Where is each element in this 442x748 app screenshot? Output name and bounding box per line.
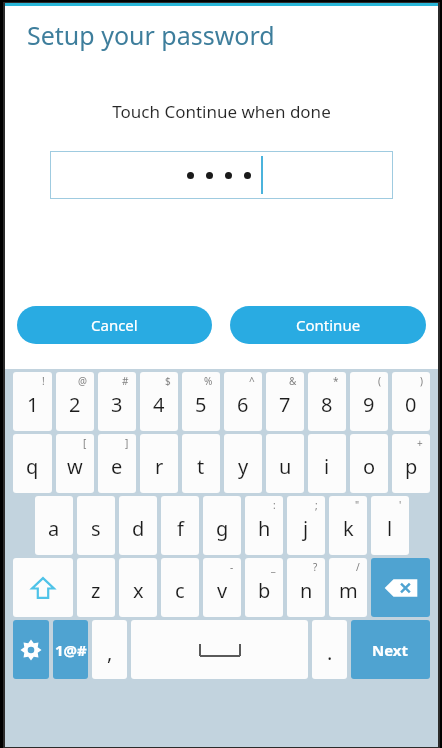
staticText: 8	[321, 391, 333, 418]
staticText: %	[204, 374, 213, 388]
button[interactable]: c	[161, 558, 199, 617]
staticText: 7	[279, 391, 291, 418]
button[interactable]: p	[392, 434, 430, 493]
button[interactable]: y	[224, 434, 262, 493]
staticText: d	[132, 515, 145, 542]
staticText: :	[273, 498, 276, 512]
staticText: p	[405, 453, 418, 480]
staticText: Cancel	[91, 315, 138, 335]
staticText: )	[420, 374, 423, 388]
staticText: @	[78, 374, 87, 388]
button[interactable]: 5	[182, 372, 220, 431]
staticText: 4	[153, 391, 165, 418]
button[interactable]: i	[308, 434, 346, 493]
staticText: l	[387, 515, 393, 542]
button[interactable]: b	[245, 558, 283, 617]
button[interactable]: n	[287, 558, 325, 617]
button[interactable]: s	[77, 496, 115, 555]
staticText: *	[333, 374, 339, 388]
button[interactable]: f	[161, 496, 199, 555]
staticText: 1	[27, 391, 39, 418]
button[interactable]: x	[119, 558, 157, 617]
button[interactable]: Shift	[13, 558, 73, 617]
button[interactable]: 6	[224, 372, 262, 431]
button[interactable]: Cancel	[17, 306, 212, 344]
button[interactable]: Next	[351, 620, 430, 679]
button[interactable]: 2	[56, 372, 94, 431]
button[interactable]: l	[371, 496, 409, 555]
button[interactable]: 7	[266, 372, 304, 431]
staticText: m	[339, 577, 358, 604]
button[interactable]: 0	[392, 372, 430, 431]
staticText: 1@#	[55, 640, 87, 660]
button[interactable]: u	[266, 434, 304, 493]
staticText: v	[217, 577, 228, 604]
button[interactable]: Settings	[13, 620, 49, 679]
button[interactable]: 3	[98, 372, 136, 431]
staticText: ?	[313, 560, 318, 574]
button[interactable]: .	[312, 620, 347, 679]
staticText: 3	[111, 391, 123, 418]
button[interactable]: q	[13, 434, 52, 493]
staticText: $	[165, 374, 171, 388]
button[interactable]: t	[182, 434, 220, 493]
staticText: k	[343, 515, 354, 542]
staticText: i	[324, 453, 330, 480]
staticText: Next	[372, 640, 409, 660]
button[interactable]: j	[287, 496, 325, 555]
staticText: h	[258, 515, 271, 542]
staticText: y	[238, 453, 249, 480]
staticText: Continue	[296, 315, 361, 335]
button[interactable]: 8	[308, 372, 346, 431]
staticText: t	[197, 453, 205, 480]
staticText: &	[289, 374, 297, 388]
staticText: (	[378, 374, 381, 388]
staticText: .	[327, 639, 333, 666]
staticText: b	[258, 577, 271, 604]
button[interactable]: 4	[140, 372, 178, 431]
staticText: 6	[237, 391, 249, 418]
staticText: e	[111, 453, 123, 480]
button[interactable]: 1@#	[53, 620, 88, 679]
staticText: 5	[195, 391, 207, 418]
staticText: #	[122, 374, 129, 388]
staticText: +	[417, 436, 423, 450]
staticText: c	[175, 577, 185, 604]
staticText: Setup your password	[27, 18, 275, 52]
staticText: s	[91, 515, 101, 542]
button[interactable]: v	[203, 558, 241, 617]
staticText: x	[133, 577, 144, 604]
button[interactable]: r	[140, 434, 178, 493]
button[interactable]: ,	[92, 620, 127, 679]
button[interactable]: g	[203, 496, 241, 555]
staticText: '	[399, 498, 402, 512]
staticText: g	[216, 515, 229, 542]
staticText: ;	[315, 498, 318, 512]
button[interactable]: h	[245, 496, 283, 555]
staticText: f	[177, 515, 184, 542]
button[interactable]: o	[350, 434, 388, 493]
button[interactable]: Continue	[230, 306, 426, 344]
staticText: q	[26, 453, 39, 480]
button[interactable]	[50, 151, 393, 199]
staticText: a	[48, 515, 60, 542]
button[interactable]: Backspace	[371, 558, 430, 617]
staticText: [	[83, 436, 87, 450]
staticText: !	[42, 374, 45, 388]
staticText: _	[271, 560, 276, 574]
button[interactable]: m	[329, 558, 367, 617]
staticText: j	[303, 515, 309, 542]
button[interactable]: k	[329, 496, 367, 555]
button[interactable]: z	[77, 558, 115, 617]
staticText: r	[155, 453, 164, 480]
staticText: -	[230, 560, 234, 574]
staticText: n	[300, 577, 313, 604]
button[interactable]: e	[98, 434, 136, 493]
button[interactable]: a	[35, 496, 73, 555]
button[interactable]: w	[56, 434, 94, 493]
button[interactable]: 9	[350, 372, 388, 431]
button[interactable]: Space	[131, 620, 308, 679]
button[interactable]: d	[119, 496, 157, 555]
staticText: u	[279, 453, 292, 480]
button[interactable]: 1	[13, 372, 52, 431]
